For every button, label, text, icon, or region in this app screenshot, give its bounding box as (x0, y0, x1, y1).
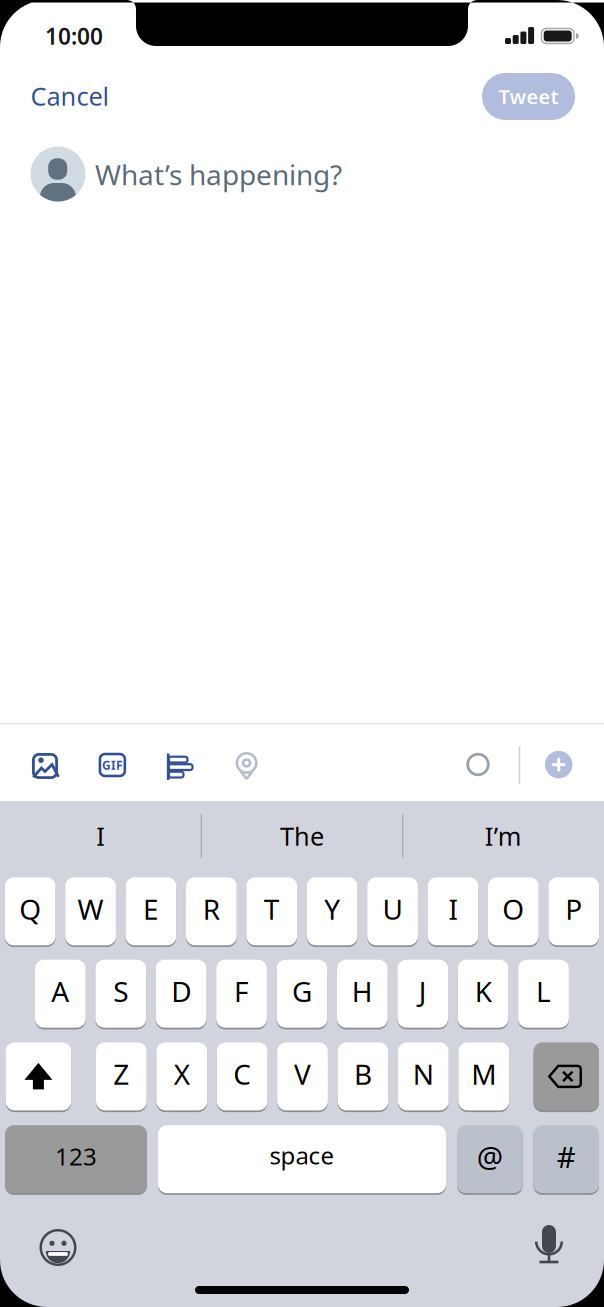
button[interactable]: @ (457, 1125, 523, 1193)
staticText: O (502, 890, 524, 927)
button[interactable]: V (277, 1042, 328, 1110)
staticText: E (143, 890, 159, 927)
staticText: T (264, 890, 280, 927)
button[interactable]: Add (545, 751, 572, 778)
button[interactable]: Delete (533, 1042, 599, 1110)
staticText: H (352, 973, 373, 1010)
staticText: # (557, 1137, 576, 1176)
button[interactable]: Y (307, 877, 357, 945)
button[interactable]: D (156, 960, 206, 1028)
button[interactable]: G (277, 960, 327, 1028)
staticText: What’s happening? (95, 156, 342, 193)
staticText: 10:00 (45, 21, 103, 51)
button[interactable]: Q (5, 877, 55, 945)
staticText: G (292, 973, 312, 1010)
staticText: @ (477, 1137, 503, 1176)
staticText: I (96, 819, 105, 853)
button[interactable]: The (204, 804, 400, 868)
button[interactable]: Shift (6, 1042, 71, 1110)
staticText: Tweet (498, 83, 558, 110)
staticText: I (448, 890, 457, 927)
staticText: 123 (55, 1140, 97, 1172)
button[interactable]: B (338, 1042, 388, 1110)
button[interactable]: Tweet (482, 73, 575, 120)
button[interactable]: I’m (405, 804, 601, 868)
staticText: D (171, 973, 191, 1010)
button[interactable]: N (398, 1042, 449, 1110)
staticText: X (174, 1055, 190, 1092)
button[interactable]: I (428, 877, 478, 945)
button[interactable]: F (216, 960, 267, 1028)
button[interactable]: A (35, 960, 86, 1028)
button[interactable]: GIF (95, 748, 129, 782)
button[interactable]: Dictate (527, 1223, 571, 1267)
button[interactable]: E (126, 877, 176, 945)
button[interactable]: O (488, 877, 539, 945)
staticText: K (475, 973, 492, 1010)
button[interactable]: Photos (28, 749, 62, 783)
staticText: B (354, 1055, 372, 1092)
staticText: V (294, 1055, 311, 1092)
staticText: I’m (485, 819, 522, 853)
button[interactable]: L (518, 960, 569, 1028)
button[interactable]: M (458, 1042, 509, 1110)
button[interactable]: P (548, 877, 599, 945)
staticText: U (382, 890, 402, 927)
button[interactable]: # (533, 1125, 599, 1193)
staticText: C (233, 1055, 251, 1092)
staticText: L (536, 973, 551, 1010)
button[interactable]: W (65, 877, 116, 945)
staticText: Z (113, 1055, 129, 1092)
button[interactable]: T (246, 877, 297, 945)
button[interactable]: Z (96, 1042, 147, 1110)
staticText: Cancel (30, 79, 109, 113)
staticText: P (565, 890, 582, 927)
button[interactable]: Emoji (37, 1227, 78, 1268)
button[interactable]: C (217, 1042, 267, 1110)
staticText: W (77, 890, 103, 927)
button[interactable]: I (3, 804, 199, 868)
staticText: A (51, 973, 69, 1010)
button[interactable]: space (158, 1125, 446, 1193)
staticText: S (113, 973, 128, 1010)
button[interactable]: S (95, 960, 146, 1028)
staticText: GIF (102, 757, 123, 773)
staticText: space (269, 1139, 334, 1171)
button[interactable]: U (367, 877, 418, 945)
staticText: The (280, 819, 324, 853)
button[interactable]: X (156, 1042, 207, 1110)
staticText: F (234, 973, 249, 1010)
staticText: Y (324, 890, 340, 927)
button[interactable]: 123 (5, 1125, 147, 1193)
button[interactable]: Location (230, 748, 264, 782)
button[interactable]: K (458, 960, 508, 1028)
button[interactable]: R (186, 877, 237, 945)
staticText: M (471, 1055, 496, 1092)
button[interactable]: H (337, 960, 388, 1028)
staticText: J (419, 973, 427, 1010)
button[interactable]: J (397, 960, 448, 1028)
button[interactable]: Poll (163, 748, 197, 782)
staticText: R (203, 890, 220, 927)
button[interactable]: Cancel (30, 79, 109, 113)
staticText: Q (19, 890, 41, 927)
staticText: N (413, 1055, 434, 1092)
